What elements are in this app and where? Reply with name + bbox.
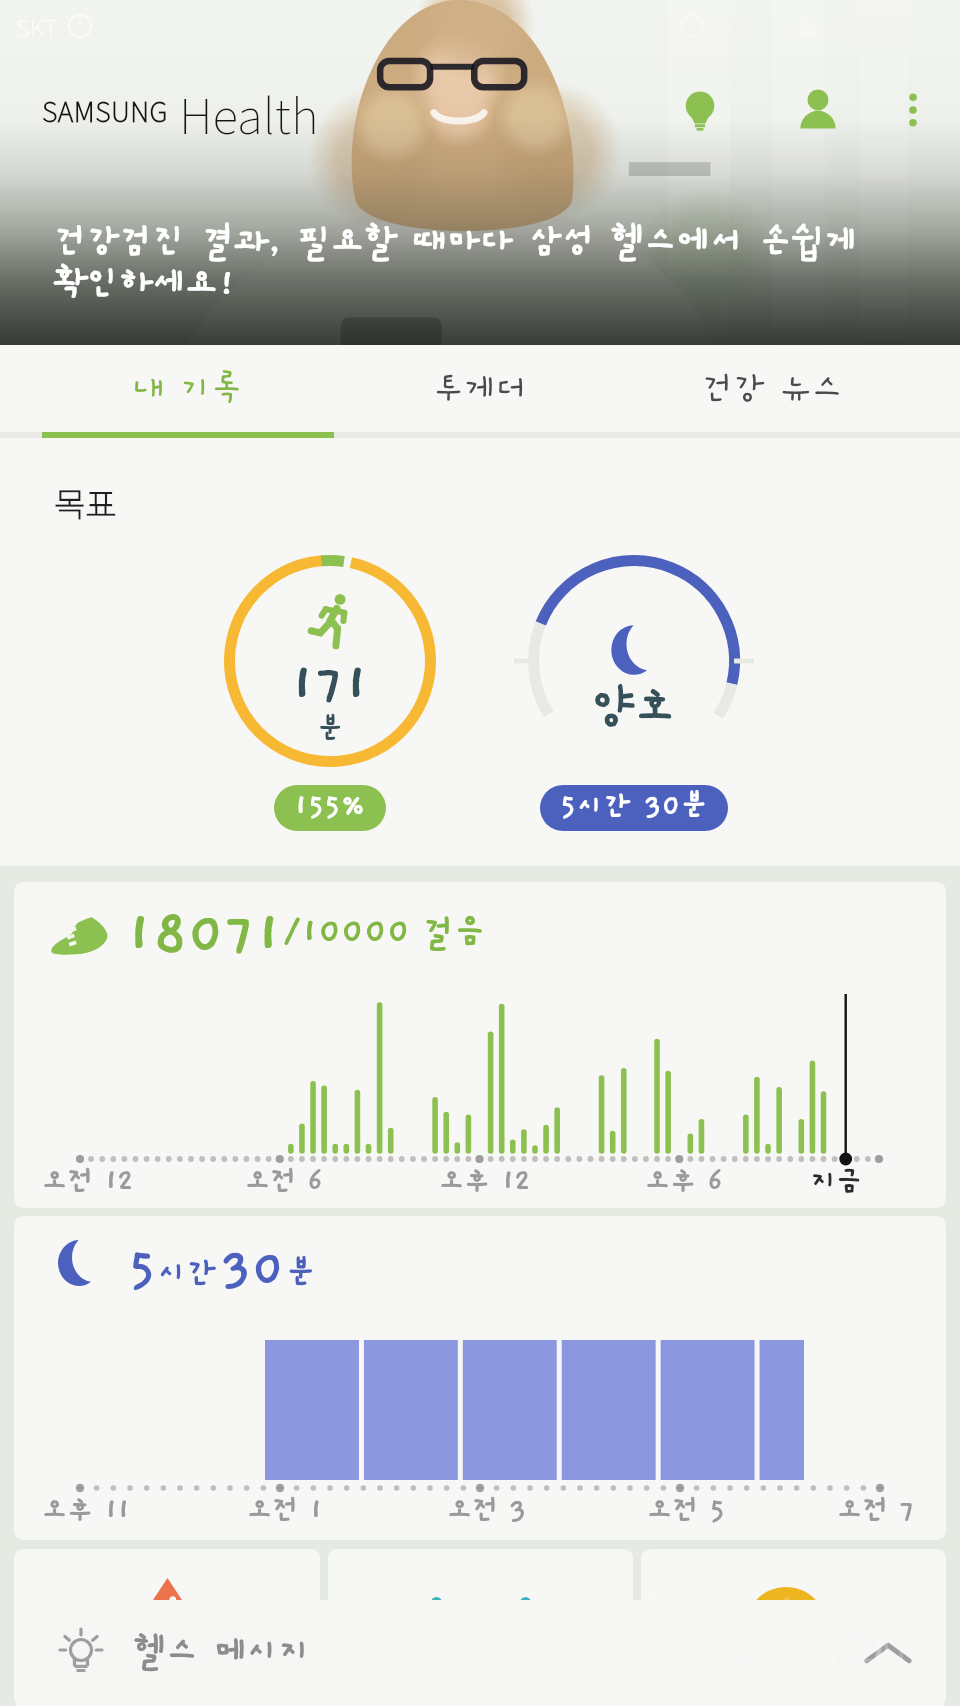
button[interactable]: 헬스 메시지 [16,1600,944,1706]
staticText: 오전 7 [836,1494,914,1527]
staticText: 오전 12 [41,1165,133,1198]
staticText: 155% [294,790,366,823]
staticText: 건강 뉴스 [702,370,843,408]
staticText: Health [179,78,319,142]
staticText: .com [828,1608,920,1675]
staticText: 지금 [810,1165,861,1198]
button[interactable]: Tips [664,74,736,146]
staticText: 양호 [591,683,677,735]
button[interactable]: 내 기록 [42,345,334,432]
staticText: 확인하세요! [54,264,236,304]
staticText: 내 기록 [133,370,243,408]
staticText: 헬스 메시지 [134,1632,311,1671]
button[interactable] [14,1549,320,1706]
button[interactable] [641,1549,946,1706]
button[interactable]: Expand [860,1625,916,1681]
staticText: 걸음 [423,913,486,951]
staticText: 오후 6 [644,1165,722,1198]
staticText: 목표 [54,478,117,527]
button[interactable]: Profile [782,74,854,146]
staticText: 5시간 30분 [560,790,708,823]
button[interactable]: 투게더 [334,345,626,432]
staticText: SKT [16,9,58,44]
staticText: /10000 [283,912,411,952]
staticText: 시간 [157,1256,217,1292]
button[interactable]: 5 [14,1216,946,1540]
staticText: 18071 [126,902,283,966]
staticText: 오전 5 [646,1494,724,1527]
staticText: 오전 3 [446,1494,526,1527]
staticText: 오후 11 [41,1494,130,1527]
button[interactable]: More options [880,77,946,143]
staticText: 5 [128,1240,157,1298]
button[interactable]: 건강 뉴스 [626,345,918,432]
staticText: dietshin [614,1568,885,1693]
staticText: 171 [290,654,370,714]
button[interactable]: 18071 [14,882,946,1208]
button[interactable] [328,1549,633,1706]
button[interactable]: 5시간 30분 [540,785,728,831]
staticText: 오전 6 [244,1165,322,1198]
staticText: 건강검진 결과, 필요할 때마다 삼성 헬스에서 손쉽게 [54,222,858,262]
staticText: 오전 1 [246,1494,322,1527]
staticText: 투게더 [433,370,527,408]
staticText: 30 [221,1240,286,1298]
staticText: 분 [317,714,344,746]
staticText: 분 [286,1256,316,1292]
staticText: SAMSUNG [42,91,168,130]
button[interactable]: 155% [274,785,386,831]
staticText: 오후 12 [438,1165,530,1198]
